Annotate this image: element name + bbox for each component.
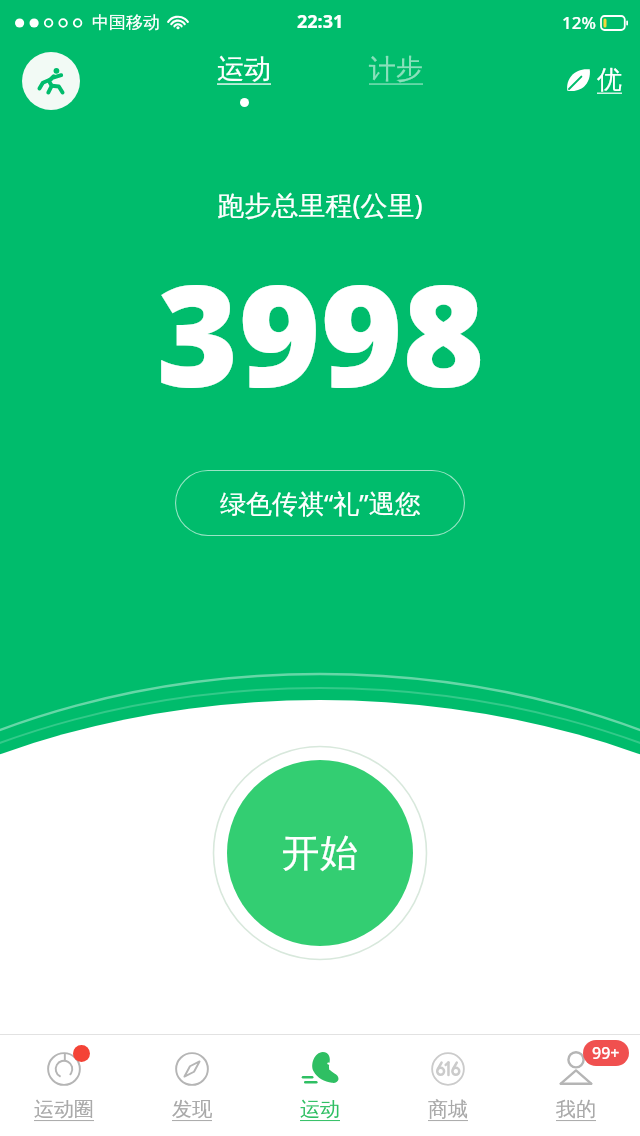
staticText: 3998 bbox=[156, 237, 485, 428]
button[interactable]: 运动 bbox=[256, 1035, 384, 1136]
staticText: 优 bbox=[597, 64, 622, 95]
staticText: 运动圈 bbox=[34, 1097, 94, 1122]
button[interactable]: 计步 bbox=[355, 63, 437, 97]
button[interactable]: 发现 bbox=[128, 1035, 256, 1136]
staticText: 绿色传祺“礼”遇您 bbox=[220, 485, 421, 521]
staticText: 22:31 bbox=[297, 9, 344, 34]
staticText: 运动 bbox=[217, 52, 271, 86]
button[interactable]: 绿色传祺“礼”遇您 bbox=[175, 470, 465, 536]
staticText: 开始 bbox=[282, 829, 358, 877]
button[interactable]: 99+ bbox=[512, 1035, 640, 1136]
staticText: 计步 bbox=[369, 52, 423, 86]
staticText: 发现 bbox=[172, 1097, 212, 1122]
staticText: 99+ bbox=[592, 1042, 620, 1064]
button[interactable]: 优 bbox=[564, 64, 622, 95]
staticText: 跑步总里程(公里) bbox=[217, 186, 423, 223]
staticText: 我的 bbox=[556, 1097, 596, 1122]
button[interactable]: 开始 bbox=[227, 760, 413, 946]
button[interactable]: 运动 bbox=[203, 52, 285, 107]
button[interactable]: 运动圈 bbox=[0, 1035, 128, 1136]
button[interactable]: Profile bbox=[22, 52, 80, 110]
staticText: 运动 bbox=[300, 1097, 340, 1122]
staticText: 中国移动 bbox=[92, 12, 160, 33]
staticText: 商城 bbox=[428, 1097, 468, 1122]
button[interactable]: 商城 bbox=[384, 1035, 512, 1136]
staticText: 12% bbox=[562, 11, 596, 34]
